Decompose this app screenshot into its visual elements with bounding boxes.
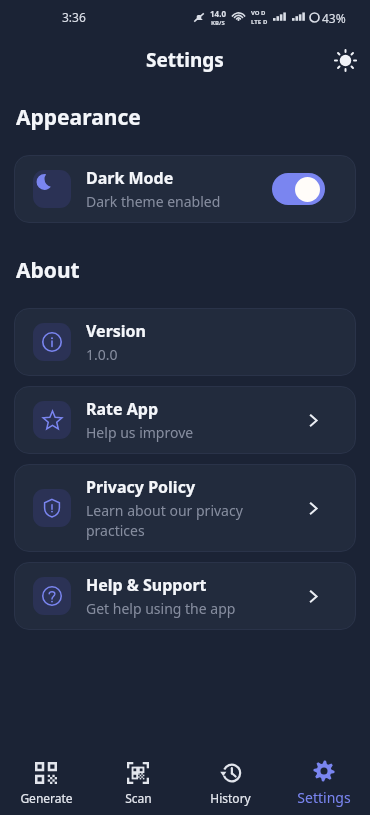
button[interactable]: Privacy Policy [14, 464, 356, 552]
staticText: Get help using the app [86, 599, 236, 618]
staticText: Dark theme enabled [86, 192, 221, 211]
staticText: D [263, 18, 268, 26]
staticText: About [16, 256, 80, 285]
button[interactable]: History [184, 751, 277, 814]
staticText: Version [86, 320, 147, 342]
staticText: LTE [251, 18, 262, 26]
staticText: Dark Mode [86, 167, 174, 189]
staticText: VO [251, 9, 260, 17]
button[interactable]: Scan [92, 751, 184, 814]
staticText: 14.0 [210, 8, 226, 19]
staticText: 1.0.0 [86, 345, 118, 364]
button[interactable]: Toggle dark mode [272, 173, 325, 205]
staticText: 3:36 [62, 9, 86, 25]
staticText: Rate App [86, 398, 159, 420]
button[interactable]: Rate App [14, 386, 356, 454]
staticText: Scan [125, 790, 152, 806]
button[interactable]: Generate [0, 751, 92, 814]
button[interactable]: Version [14, 308, 356, 376]
staticText: Learn about our privacy practices [86, 501, 251, 540]
staticText: Help & Support [86, 574, 207, 596]
button[interactable]: Switch to light mode [327, 42, 363, 78]
staticText: Settings [146, 47, 224, 73]
staticText: History [210, 790, 251, 806]
staticText: Help us improve [86, 423, 194, 442]
staticText: 43% [322, 10, 346, 26]
staticText: Generate [20, 790, 73, 806]
staticText: Privacy Policy [86, 476, 196, 498]
staticText: KB/S [211, 19, 225, 27]
staticText: Settings [297, 788, 351, 807]
staticText: D [261, 9, 266, 17]
button[interactable]: Help & Support [14, 562, 356, 630]
button[interactable]: Dark Mode [14, 155, 356, 223]
button[interactable]: Settings [277, 749, 370, 815]
staticText: Appearance [16, 103, 141, 132]
